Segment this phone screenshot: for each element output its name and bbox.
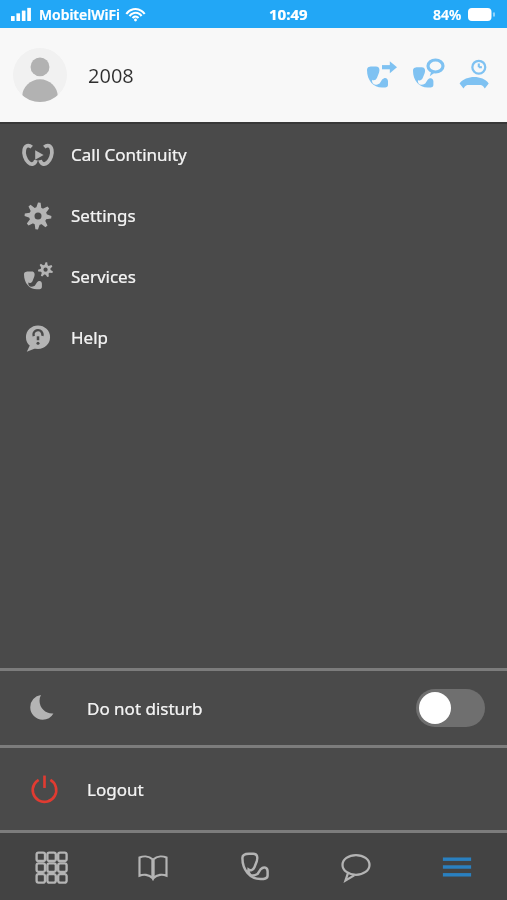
- staticText: Call Continuity: [71, 143, 187, 166]
- button[interactable]: Help: [0, 307, 507, 368]
- button[interactable]: Settings: [0, 185, 507, 246]
- staticText: MobitelWiFi: [39, 5, 121, 24]
- button[interactable]: Dialpad: [0, 833, 102, 900]
- button[interactable]: Do not disturb toggle: [416, 689, 485, 727]
- staticText: Settings: [71, 204, 136, 227]
- button[interactable]: Call with message: [405, 52, 451, 98]
- staticText: Logout: [87, 778, 144, 801]
- staticText: 84%: [433, 5, 462, 24]
- button[interactable]: Calls: [204, 833, 305, 900]
- button[interactable]: Logout: [0, 748, 507, 830]
- button[interactable]: Recent calls: [451, 52, 497, 98]
- button[interactable]: Call forward: [359, 52, 405, 98]
- button[interactable]: Menu: [406, 833, 507, 900]
- staticText: Do not disturb: [87, 697, 203, 720]
- staticText: Help: [71, 326, 109, 349]
- staticText: 10:49: [269, 4, 308, 24]
- staticText: Services: [71, 265, 136, 288]
- button[interactable]: Contacts: [102, 833, 204, 900]
- button[interactable]: Services: [0, 246, 507, 307]
- button[interactable]: Chat: [305, 833, 406, 900]
- button[interactable]: Profile: [13, 48, 67, 102]
- button[interactable]: Call Continuity: [0, 124, 507, 185]
- button[interactable]: Do not disturb: [0, 671, 507, 745]
- staticText: 2008: [88, 62, 134, 89]
